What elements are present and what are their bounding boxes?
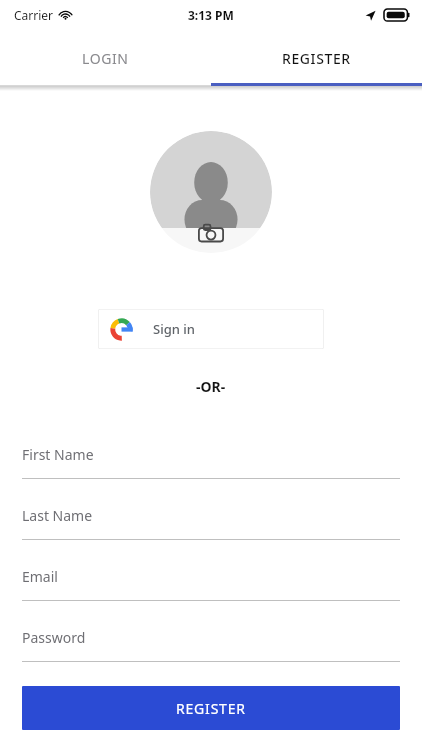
staticText: -OR- bbox=[196, 377, 226, 396]
button[interactable]: REGISTER bbox=[22, 686, 400, 730]
staticText: Last Name bbox=[22, 506, 93, 525]
button[interactable]: Email bbox=[22, 564, 400, 601]
button[interactable]: REGISTER bbox=[211, 30, 422, 86]
staticText: Sign in bbox=[153, 320, 195, 338]
button[interactable]: Password bbox=[22, 625, 400, 662]
button[interactable]: Sign in bbox=[98, 309, 324, 349]
button[interactable]: First Name bbox=[22, 442, 400, 479]
staticText: Carrier bbox=[14, 7, 54, 23]
button[interactable]: Last Name bbox=[22, 503, 400, 540]
staticText: REGISTER bbox=[282, 49, 351, 68]
staticText: First Name bbox=[22, 445, 94, 464]
button[interactable]: LOGIN bbox=[0, 30, 211, 86]
staticText: Email bbox=[22, 567, 58, 586]
staticText: LOGIN bbox=[82, 49, 129, 68]
button[interactable]: Change profile photo bbox=[150, 131, 272, 253]
staticText: REGISTER bbox=[176, 699, 246, 718]
staticText: 3:13 PM bbox=[188, 7, 234, 23]
staticText: Password bbox=[22, 628, 86, 647]
